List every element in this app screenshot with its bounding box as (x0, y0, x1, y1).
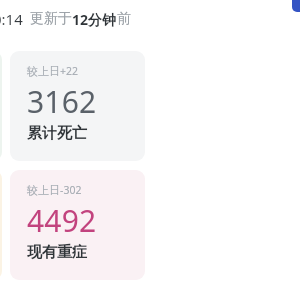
button[interactable]: 今日新增 (0, 170, 2, 280)
staticText: 12分钟 (72, 10, 117, 29)
staticText: +22 (60, 64, 79, 78)
staticText: 4492 (27, 200, 97, 241)
button[interactable]: 较上日 (10, 51, 145, 161)
button[interactable]: 较上日 (10, 170, 145, 280)
staticText: 较上日 (27, 183, 60, 197)
button[interactable]: 较上日 (0, 51, 2, 161)
staticText: 较上日 (27, 64, 60, 78)
staticText: 现有重症 (27, 243, 87, 262)
staticText: 前 (117, 10, 131, 28)
staticText: 3162 (27, 81, 97, 122)
staticText: 0:14 (0, 9, 23, 29)
staticText: -302 (60, 183, 82, 197)
staticText: 累计死亡 (27, 124, 87, 143)
staticText: 更新于 (30, 10, 72, 28)
